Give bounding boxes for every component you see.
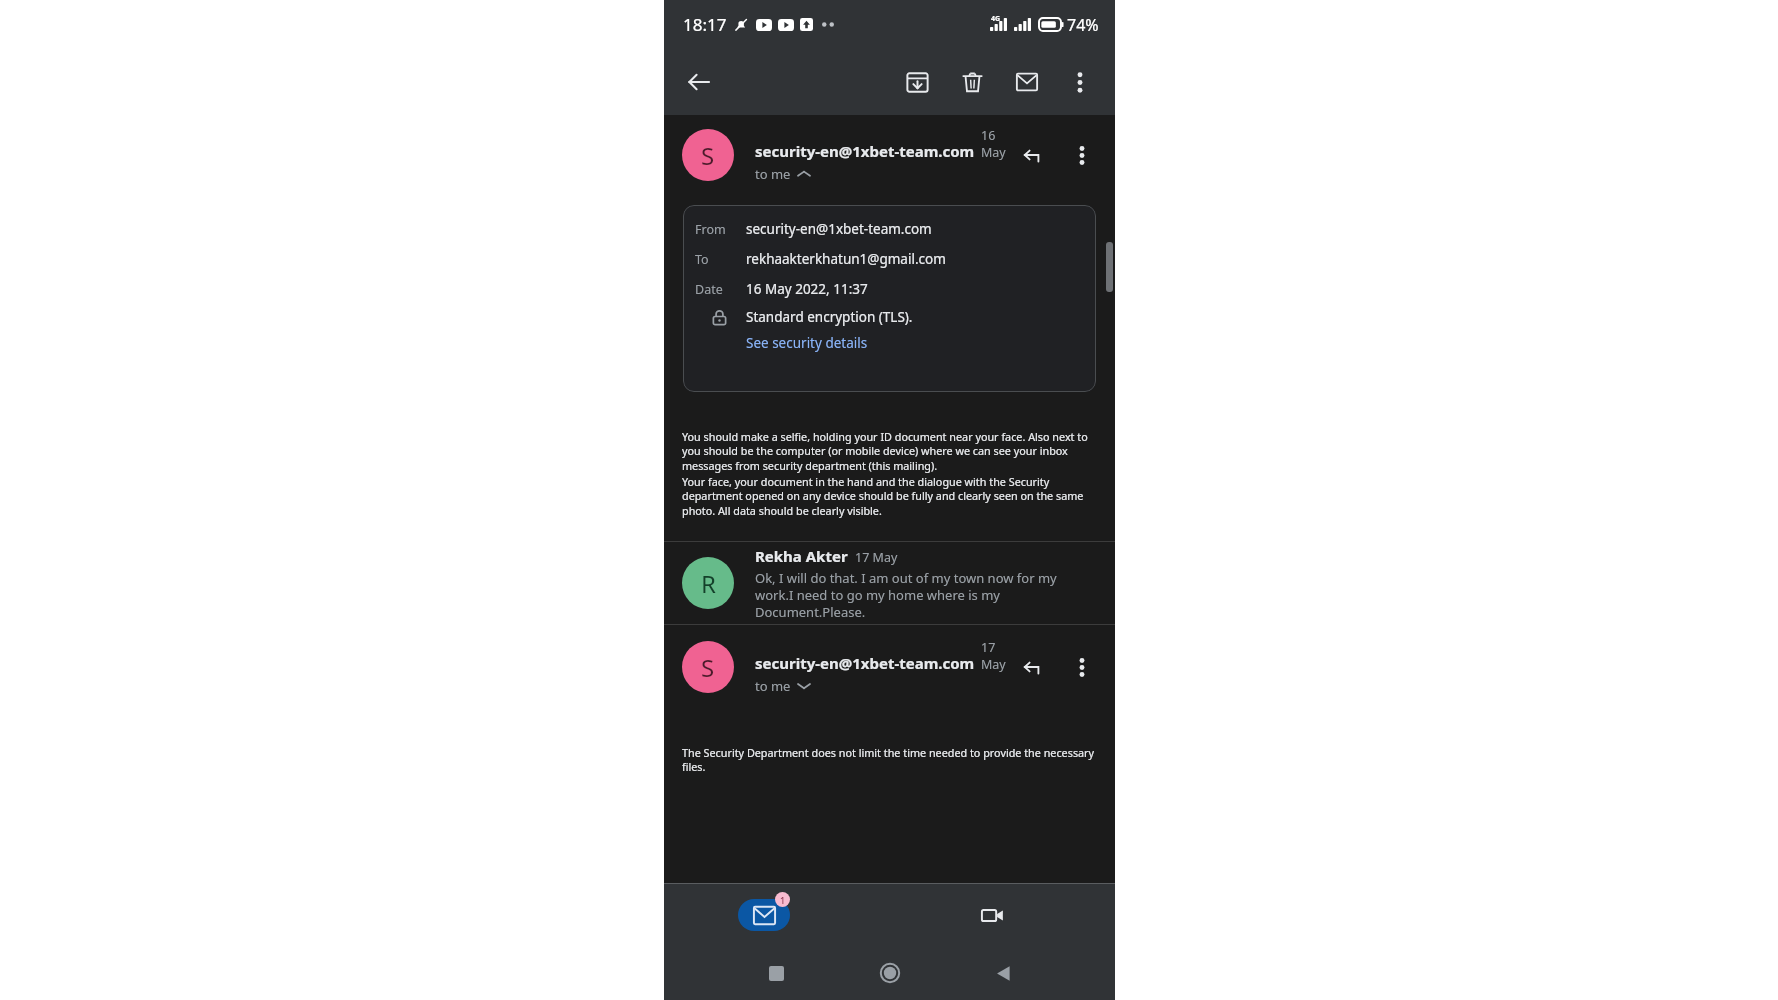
- staticText: You should make a selfie, holding your I…: [682, 429, 1097, 474]
- button[interactable]: Video call: [969, 892, 1015, 938]
- staticText: security-en@1xbet-team.com: [755, 141, 975, 161]
- staticText: 18:17: [683, 13, 727, 36]
- button[interactable]: Archive: [894, 59, 940, 105]
- staticText: S: [701, 651, 715, 684]
- staticText: To: [695, 251, 709, 268]
- button[interactable]: Mark unread: [1004, 59, 1050, 105]
- staticText: 17 May: [981, 639, 1013, 673]
- staticText: security-en@1xbet-team.com: [746, 220, 932, 238]
- button[interactable]: More options: [1057, 59, 1103, 105]
- staticText: 17 May: [855, 549, 898, 566]
- staticText: to me: [755, 677, 791, 695]
- button[interactable]: Mail: [738, 899, 790, 931]
- button[interactable]: See security details: [746, 334, 868, 352]
- button[interactable]: R: [682, 557, 734, 609]
- staticText: S: [701, 139, 715, 172]
- staticText: security-en@1xbet-team.com: [755, 653, 975, 673]
- button[interactable]: More options: [1061, 134, 1103, 176]
- button[interactable]: From: [683, 205, 1096, 392]
- button[interactable]: More options: [1061, 646, 1103, 688]
- button[interactable]: to me: [755, 677, 810, 695]
- button[interactable]: S: [682, 641, 734, 693]
- staticText: 1: [780, 894, 786, 906]
- button[interactable]: Back: [676, 59, 722, 105]
- staticText: rekhaakterkhatun1@gmail.com: [746, 250, 946, 268]
- staticText: Ok, I will do that. I am out of my town …: [755, 569, 1097, 621]
- button[interactable]: Delete: [949, 59, 995, 105]
- button[interactable]: Reply: [1013, 646, 1055, 688]
- staticText: 16 May 2022, 11:37: [746, 280, 868, 298]
- staticText: Date: [695, 281, 723, 298]
- button[interactable]: S: [682, 129, 734, 181]
- staticText: The Security Department does not limit t…: [682, 745, 1097, 774]
- staticText: 4G: [991, 14, 1001, 24]
- button[interactable]: Back: [981, 951, 1025, 995]
- staticText: Standard encryption (TLS).: [746, 308, 913, 326]
- staticText: R: [701, 567, 716, 600]
- button[interactable]: R: [664, 542, 1115, 624]
- button[interactable]: Home: [868, 951, 912, 995]
- button[interactable]: Reply: [1013, 134, 1055, 176]
- staticText: 16 May: [981, 127, 1013, 161]
- staticText: to me: [755, 165, 791, 183]
- staticText: Your face, your document in the hand and…: [682, 474, 1097, 519]
- button[interactable]: Recents: [754, 951, 798, 995]
- button[interactable]: to me: [755, 165, 810, 183]
- staticText: Rekha Akter: [755, 546, 848, 566]
- staticText: 74%: [1067, 14, 1099, 36]
- staticText: From: [695, 221, 726, 238]
